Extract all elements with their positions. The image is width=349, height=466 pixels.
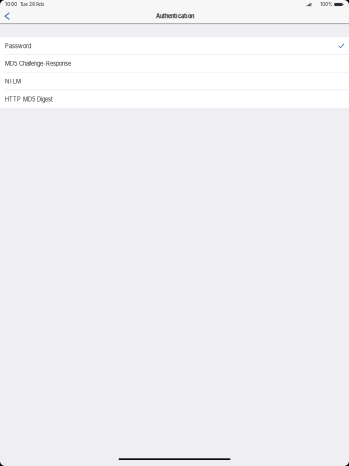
button[interactable]: Back — [1, 9, 13, 23]
staticText: NTLM — [5, 78, 21, 85]
staticText: Tue 26 Feb — [20, 2, 44, 7]
staticText: Password — [5, 43, 31, 50]
staticText: 100% — [320, 2, 332, 7]
staticText: 10:00 — [5, 2, 17, 7]
button[interactable]: NTLM — [0, 72, 349, 90]
button[interactable]: HTTP MD5 Digest — [0, 90, 349, 108]
staticText: MD5 Challenge-Response — [5, 60, 71, 67]
button[interactable]: MD5 Challenge-Response — [0, 55, 349, 73]
staticText: Authentication — [156, 13, 194, 20]
button[interactable]: Password — [0, 37, 349, 55]
staticText: HTTP MD5 Digest — [5, 96, 53, 103]
